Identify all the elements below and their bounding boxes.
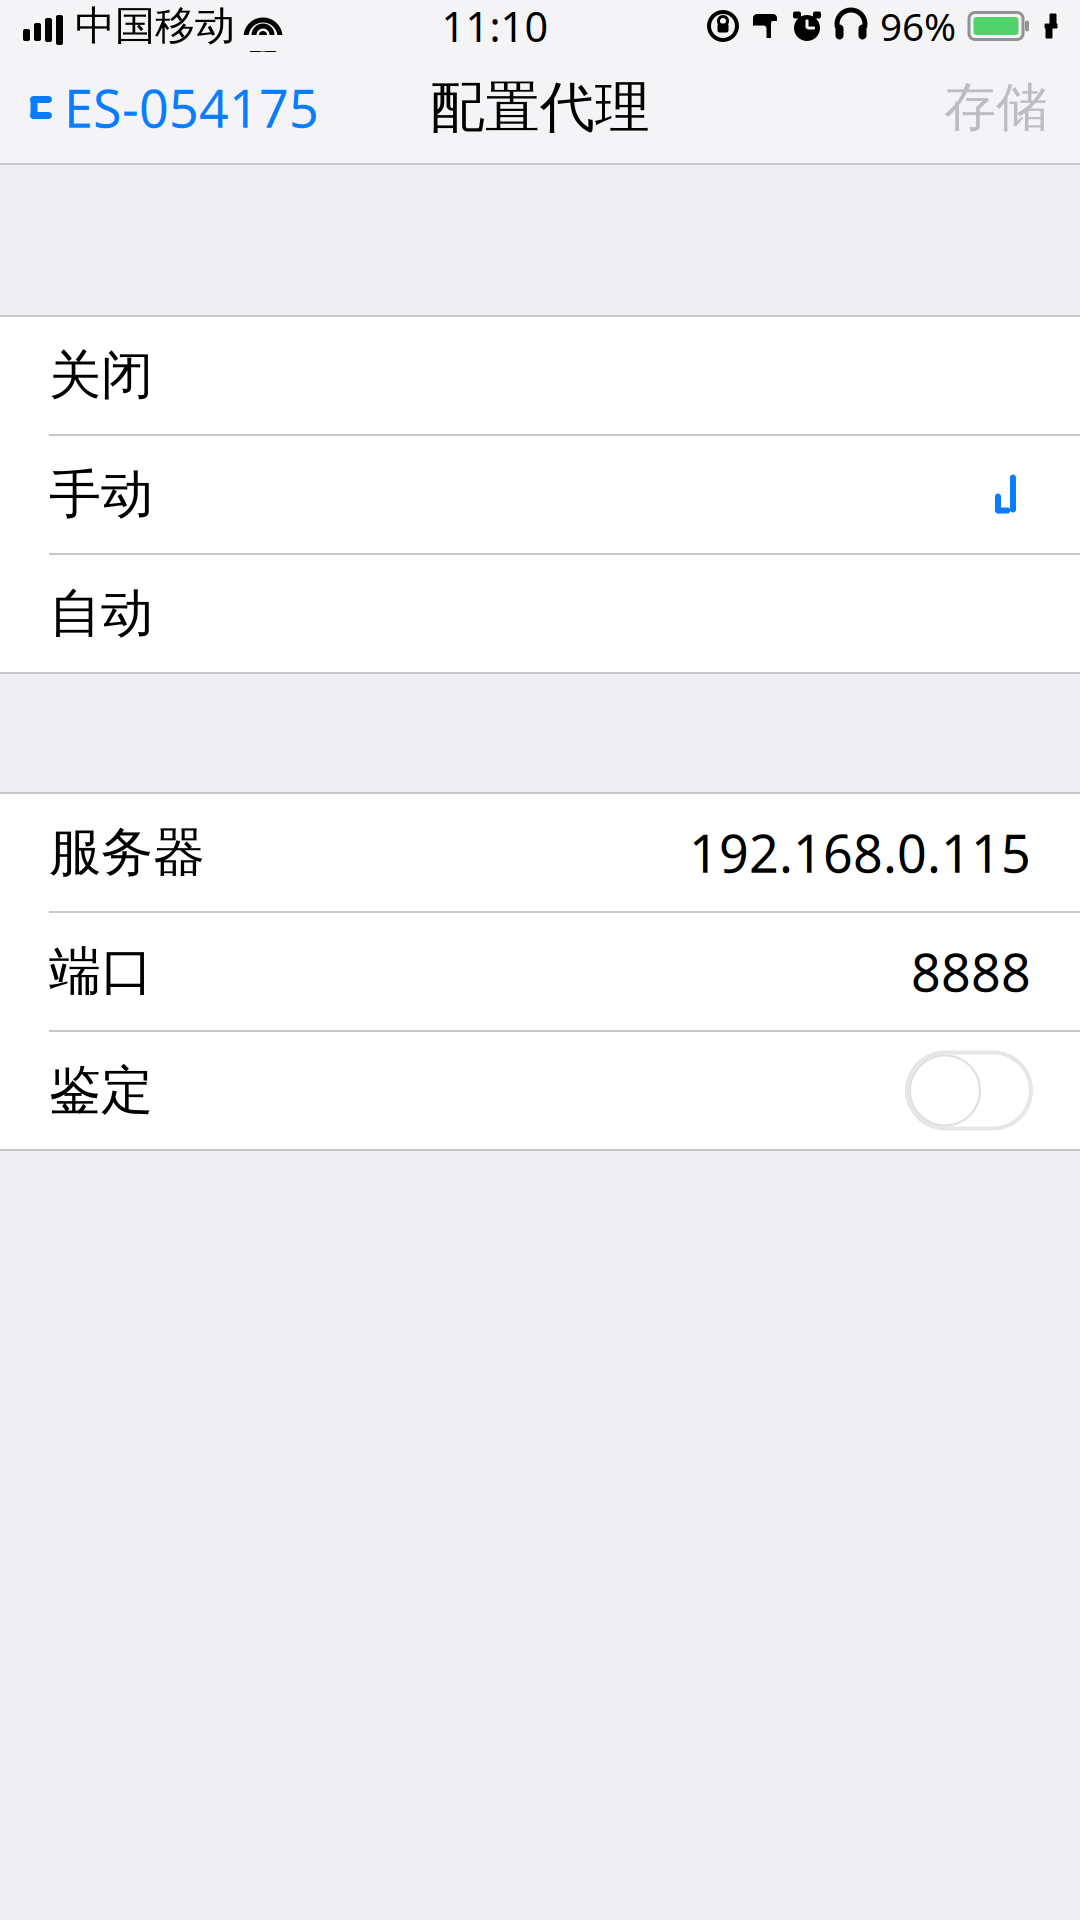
staticText: 中国移动 [75,1,235,50]
staticText: 鉴定 [49,1059,153,1122]
staticText: 配置代理 [430,74,650,141]
button[interactable]: 服务器 [0,794,1080,911]
staticText: ES-054175 [64,73,319,142]
staticText: 端口 [49,940,153,1003]
staticText: 96% [880,0,956,52]
button[interactable]: 端口 [0,913,1080,1030]
staticText: 存储 [944,76,1048,139]
button[interactable]: 鉴定 [907,1052,1031,1128]
staticText: 192.168.0.115 [689,818,1031,887]
button[interactable]: 手动 [0,436,1080,553]
staticText: 11:10 [441,0,548,53]
button[interactable]: ES-054175 [0,53,319,162]
button[interactable]: 关闭 [0,317,1080,434]
staticText: 手动 [49,463,153,526]
button[interactable]: 存储 [944,56,1080,159]
staticText: 服务器 [49,821,205,884]
staticText: 关闭 [49,344,153,407]
staticText: 8888 [911,937,1031,1006]
button[interactable]: 自动 [0,555,1080,672]
staticText: 自动 [49,582,153,645]
